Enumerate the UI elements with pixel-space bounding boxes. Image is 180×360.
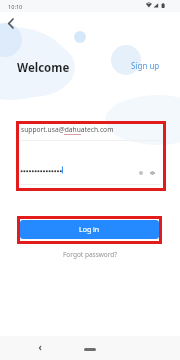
- staticText: Welcome: [17, 60, 70, 76]
- staticText: 10:10: [8, 3, 23, 11]
- button[interactable]: Show password: [147, 167, 158, 178]
- button[interactable]: Forgot password?: [60, 247, 121, 262]
- staticText: support.usa@dahuatech.com: [21, 125, 114, 134]
- button[interactable]: [21, 164, 151, 176]
- button[interactable]: Clear: [135, 167, 146, 178]
- button[interactable]: Sign up: [127, 56, 164, 75]
- button[interactable]: Back: [2, 15, 18, 31]
- staticText: Forgot password?: [63, 250, 118, 259]
- button[interactable]: support.usa@dahuatech.com: [21, 125, 141, 137]
- button[interactable]: Back: [33, 341, 47, 355]
- button[interactable]: Log in: [20, 220, 159, 239]
- staticText: Sign up: [131, 60, 160, 71]
- staticText: Log in: [79, 225, 100, 235]
- button[interactable]: Home: [84, 348, 96, 351]
